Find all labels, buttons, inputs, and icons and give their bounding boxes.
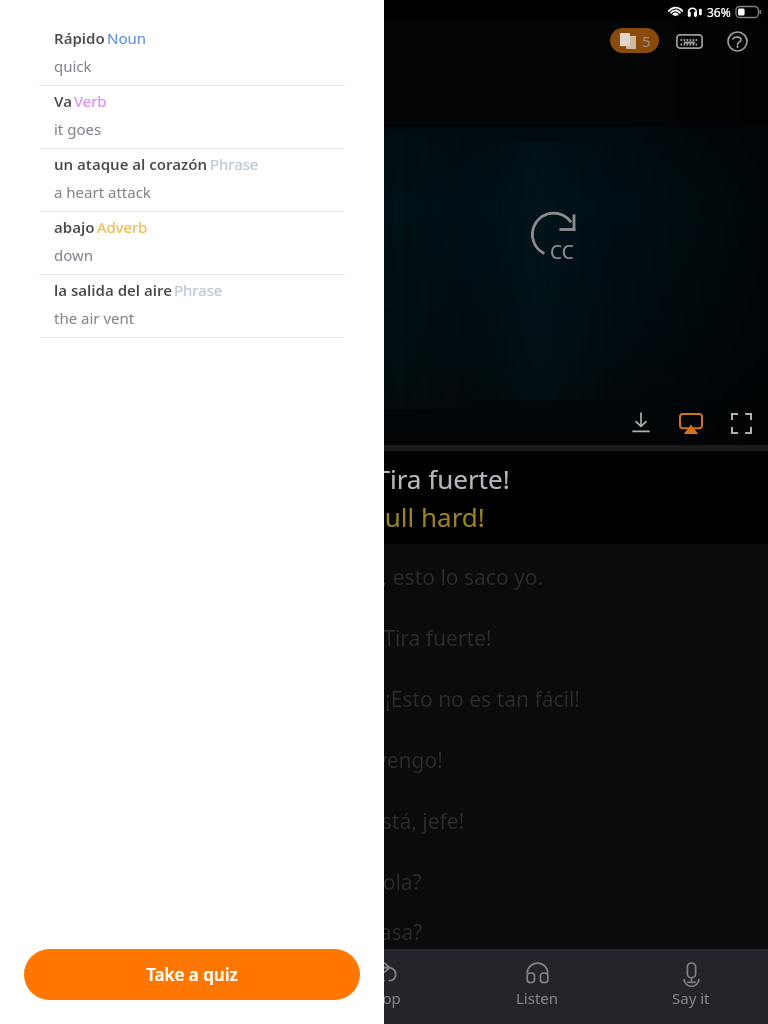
button[interactable]: AirPlay [673,405,709,441]
staticText: Rápido [54,28,105,48]
button[interactable]: ¡Esto no es tan fácil! [0,666,768,727]
staticText: 36% [707,4,731,20]
staticText: quick [54,56,92,76]
button[interactable]: Say it [614,949,768,1024]
staticText: a heart attack [54,182,151,202]
staticText: Adverb [97,217,148,237]
button[interactable]: Learn [0,949,153,1024]
button[interactable]: Rápido [0,23,384,86]
button[interactable]: Shop [306,949,460,1024]
staticText: Shop [365,988,401,1008]
button[interactable]: abajo [0,212,384,275]
button[interactable]: Help [716,25,758,57]
button[interactable]: ¡Tira fuerte! [0,605,768,666]
staticText: ¡Ya vengo! [343,746,443,775]
staticText: Phrase [210,154,259,174]
staticText: Noun [107,28,147,48]
button[interactable]: ¿Hola? [0,849,768,910]
button[interactable]: la salida del aire [0,275,384,338]
staticText: Listen [516,988,559,1008]
staticText: Take a quiz [146,963,238,986]
staticText: No, esto lo saco yo. [353,563,544,592]
button[interactable]: un ataque al corazón [0,149,384,212]
button[interactable]: No, esto lo saco yo. [0,544,768,605]
staticText: it goes [54,119,102,139]
button[interactable]: 5 [610,28,659,53]
staticText: abajo [54,217,95,237]
staticText: Learn [56,988,97,1008]
staticText: CC [550,239,574,265]
button[interactable]: Watch [153,949,306,1024]
button[interactable]: ¡Ya vengo! [0,727,768,788]
button[interactable]: Download [623,405,659,441]
button[interactable]: Take a quiz [24,949,360,1000]
button[interactable]: ¡Ahí está, jefe! [0,788,768,849]
button[interactable]: Fullscreen [723,405,759,441]
staticText: ¡Esto no es tan fácil! [385,685,581,714]
button[interactable]: Keyboard [668,25,710,57]
staticText: ¿Hola? [358,868,422,897]
staticText: Watch [208,988,252,1008]
staticText: ¡Ahí está, jefe! [327,807,465,836]
button[interactable]: Listen [460,949,614,1024]
staticText: ¡Tira fuerte! [369,461,510,496]
staticText: Verb [74,91,107,111]
staticText: 5 [642,31,651,51]
staticText: Say it [672,988,710,1008]
button[interactable]: ¡Tira fuerte! [0,451,768,544]
staticText: la salida del aire [54,280,172,300]
staticText: ¡Tira fuerte! [378,624,492,653]
staticText: the air vent [54,308,135,328]
staticText: un ataque al corazón [54,154,208,174]
staticText: Va [54,91,72,111]
staticText: Phrase [174,280,223,300]
button[interactable]: ¿Qué pasa? [0,910,768,949]
staticText: Pull hard! [369,499,485,534]
button[interactable]: Va [0,86,384,149]
staticText: ¿Qué pasa? [311,918,423,947]
staticText: down [54,245,94,265]
